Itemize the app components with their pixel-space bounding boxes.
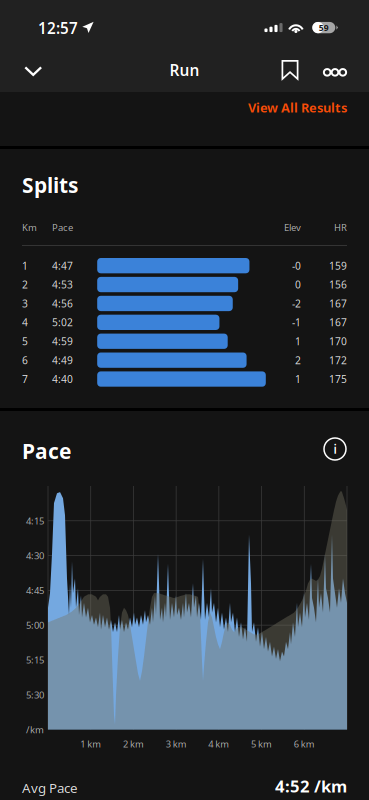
staticText: 0 bbox=[295, 278, 301, 291]
staticText: 2 bbox=[295, 353, 301, 367]
staticText: -1 bbox=[292, 315, 301, 329]
staticText: -0 bbox=[292, 259, 301, 272]
staticText: Elev bbox=[284, 221, 301, 234]
staticText: i bbox=[333, 441, 336, 457]
staticText: 4:56 bbox=[52, 297, 73, 310]
staticText: 5 bbox=[22, 334, 28, 348]
staticText: 7 bbox=[22, 372, 28, 386]
staticText: 4:45 bbox=[26, 584, 44, 597]
staticText: 4:59 bbox=[52, 334, 73, 348]
staticText: 170 bbox=[329, 334, 347, 348]
staticText: 3 km bbox=[166, 738, 187, 750]
staticText: 4:15 bbox=[26, 514, 44, 527]
staticText: 1 bbox=[22, 259, 28, 272]
button[interactable]: Save activity bbox=[268, 48, 312, 92]
staticText: 167 bbox=[329, 297, 347, 310]
staticText: 6 bbox=[22, 353, 28, 367]
button[interactable]: More options bbox=[313, 50, 357, 94]
staticText: 2 km bbox=[123, 738, 144, 750]
staticText: 1 bbox=[295, 334, 301, 348]
button[interactable]: View All Results bbox=[226, 91, 369, 124]
staticText: Pace bbox=[52, 221, 73, 234]
staticText: 59 bbox=[319, 22, 329, 33]
staticText: 5:30 bbox=[26, 688, 44, 701]
staticText: 3 bbox=[22, 297, 28, 310]
staticText: 5 km bbox=[251, 738, 272, 750]
staticText: 172 bbox=[329, 353, 347, 367]
staticText: 4 km bbox=[208, 738, 229, 750]
staticText: Avg Pace bbox=[22, 779, 78, 797]
button[interactable]: Collapse bbox=[11, 49, 55, 93]
staticText: HR bbox=[334, 221, 347, 234]
staticText: Km bbox=[22, 221, 37, 234]
staticText: 4:52 /km bbox=[275, 775, 347, 797]
button[interactable]: Pace information bbox=[313, 427, 357, 471]
staticText: Pace bbox=[22, 437, 71, 465]
staticText: 6 km bbox=[294, 738, 315, 750]
staticText: 159 bbox=[329, 259, 347, 272]
staticText: /km bbox=[26, 723, 44, 736]
staticText: 5:02 bbox=[52, 315, 73, 329]
staticText: 5:00 bbox=[26, 619, 44, 631]
staticText: 2 bbox=[22, 278, 28, 291]
staticText: 5:15 bbox=[26, 654, 44, 666]
staticText: 175 bbox=[329, 372, 347, 386]
staticText: 4 bbox=[22, 315, 28, 329]
staticText: 4:49 bbox=[52, 353, 73, 367]
staticText: 167 bbox=[329, 315, 347, 329]
staticText: 1 km bbox=[80, 738, 101, 750]
staticText: 4:47 bbox=[52, 259, 73, 272]
staticText: -2 bbox=[292, 297, 301, 310]
staticText: 1 bbox=[295, 372, 301, 386]
staticText: Run bbox=[169, 60, 199, 80]
staticText: 4:53 bbox=[52, 278, 73, 291]
staticText: View All Results bbox=[248, 99, 347, 116]
staticText: 4:30 bbox=[26, 549, 44, 562]
staticText: 4:40 bbox=[52, 372, 73, 386]
staticText: Splits bbox=[22, 171, 79, 199]
staticText: 156 bbox=[329, 278, 347, 291]
staticText: 12:57 bbox=[38, 18, 78, 38]
